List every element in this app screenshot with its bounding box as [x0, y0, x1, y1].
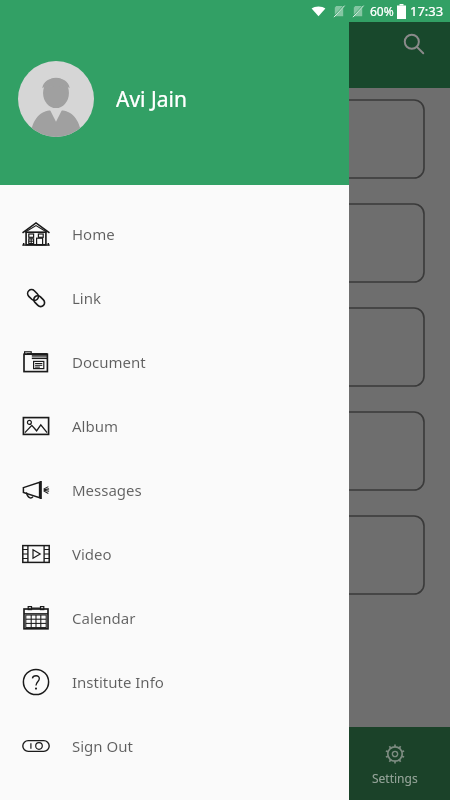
staticText: Information — [42, 128, 133, 150]
button[interactable]: Profile photo — [18, 61, 94, 137]
staticText: Settings — [372, 770, 418, 786]
staticText: Avi Jain — [116, 85, 187, 114]
button[interactable]: Document — [0, 330, 349, 394]
button[interactable]: Album — [0, 394, 349, 458]
button[interactable]: Link — [0, 266, 349, 330]
button[interactable]: Home — [0, 202, 349, 266]
button[interactable]: Sign Out — [0, 714, 349, 778]
button[interactable] — [26, 204, 424, 282]
button[interactable]: Information — [26, 100, 424, 178]
staticText: Calendar — [72, 608, 136, 628]
staticText: Video — [72, 544, 112, 564]
staticText: 60% — [370, 3, 394, 19]
button[interactable]: Messages — [0, 458, 349, 522]
button[interactable] — [26, 412, 424, 490]
staticText: Album — [72, 416, 118, 436]
button[interactable]: Calendar — [0, 586, 349, 650]
staticText: Institute Info — [72, 672, 164, 692]
button[interactable]: Search — [392, 22, 436, 66]
button[interactable] — [26, 516, 424, 594]
staticText: Home — [72, 224, 115, 244]
button[interactable]: Video — [0, 522, 349, 586]
staticText: Link — [72, 288, 102, 308]
button[interactable]: Settings — [340, 727, 450, 800]
button[interactable] — [26, 308, 424, 386]
staticText: Document — [72, 352, 146, 372]
staticText: Sign Out — [72, 736, 133, 756]
staticText: Messages — [72, 480, 142, 500]
button[interactable]: Institute Info — [0, 650, 349, 714]
staticText: 17:33 — [410, 2, 444, 20]
